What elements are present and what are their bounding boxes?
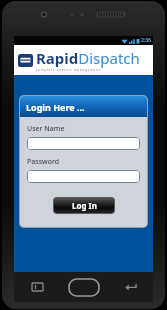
staticText: Log In bbox=[72, 200, 97, 211]
staticText: RapidDispatch bbox=[36, 48, 140, 68]
staticText: c o m p l e t e s e r v i c e m a n a g … bbox=[36, 68, 100, 72]
button[interactable]: Log In bbox=[54, 198, 114, 213]
staticText: 2:36 bbox=[141, 37, 151, 44]
staticText: User Name bbox=[27, 124, 65, 134]
staticText: Login Here ... bbox=[26, 101, 85, 113]
button[interactable] bbox=[27, 137, 140, 150]
button[interactable]: Back bbox=[107, 272, 153, 302]
button[interactable]: Home bbox=[61, 272, 107, 302]
button[interactable]: Menu bbox=[14, 272, 61, 302]
button[interactable] bbox=[27, 170, 140, 183]
staticText: Password bbox=[27, 157, 60, 167]
